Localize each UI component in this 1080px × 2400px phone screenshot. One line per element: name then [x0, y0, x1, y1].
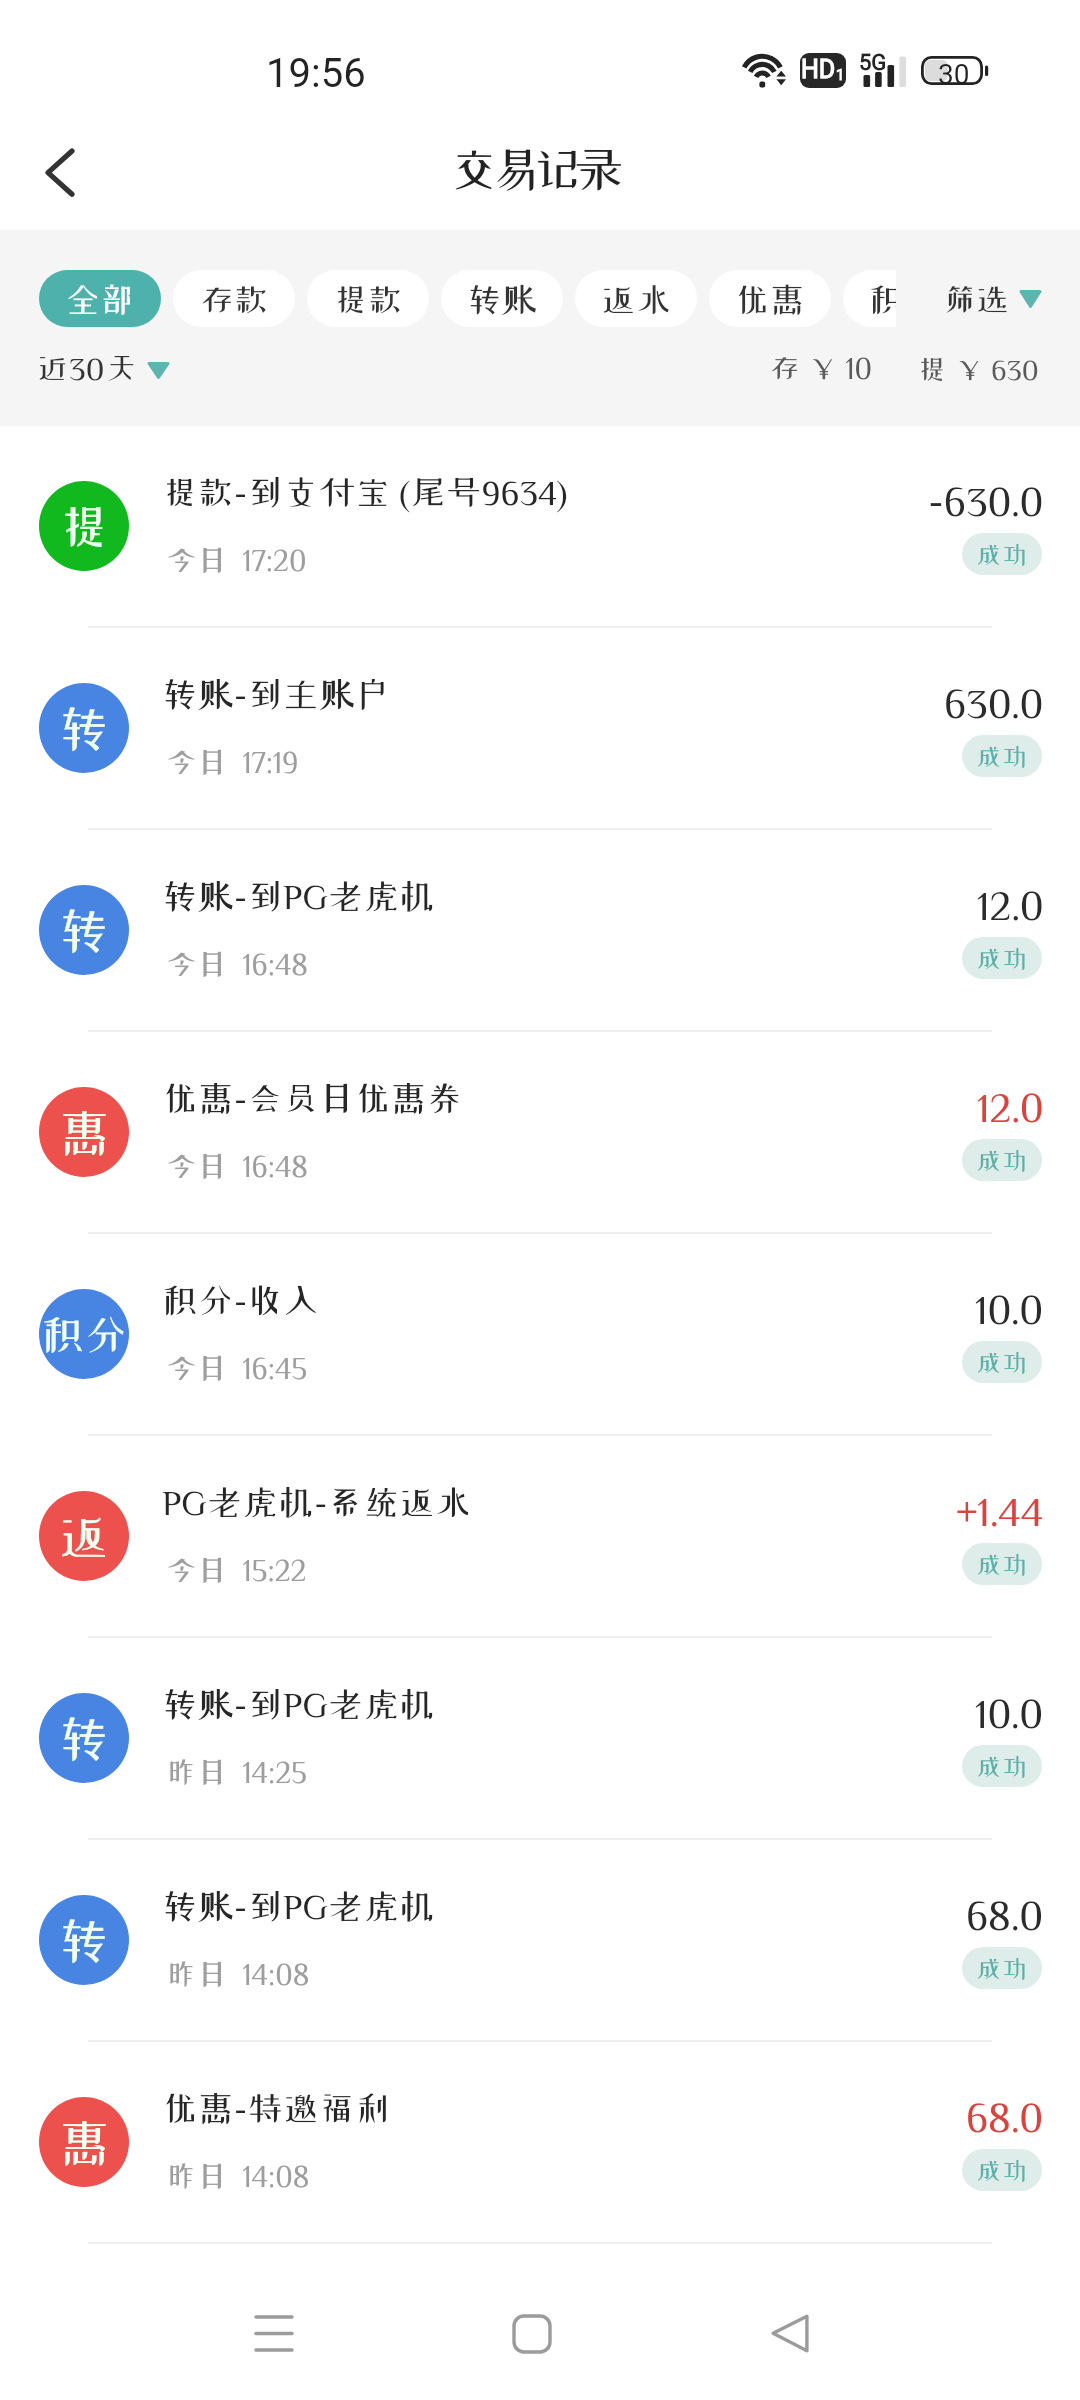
staticText: 12.0 [977, 1086, 1044, 1127]
staticText: 68.0 [966, 2096, 1044, 2137]
staticText: 提款 [333, 282, 403, 316]
staticText: 交易记录 [448, 144, 615, 194]
staticText: 1 [836, 66, 845, 84]
staticText: 积分 [41, 1313, 128, 1355]
staticText: 转账-到PG老虎机 [162, 1888, 436, 1923]
staticText: 成功 [976, 1754, 1028, 1779]
button[interactable]: 返水 [575, 270, 697, 327]
staticText: 成功 [976, 744, 1028, 769]
staticText: 今日 17:19 [166, 747, 299, 777]
staticText: 昨日 14:08 [166, 1959, 310, 1989]
staticText: 成功 [976, 1148, 1028, 1173]
staticText: 积分 [869, 282, 939, 316]
staticText: 转账-到PG老虎机 [162, 1686, 436, 1721]
staticText: 存 ￥ 10 [769, 353, 873, 383]
staticText: 返 [58, 1511, 110, 1561]
button[interactable]: 提款 [307, 270, 429, 327]
button[interactable]: 存款 [173, 270, 295, 327]
staticText: 成功 [976, 1552, 1028, 1577]
staticText: 积分-收入 [162, 1282, 319, 1317]
staticText: 转账-到PG老虎机 [162, 878, 436, 913]
staticText: 5G [859, 50, 887, 76]
staticText: 630.0 [944, 682, 1044, 723]
staticText: 存款 [199, 282, 269, 316]
staticText: 全部 [65, 282, 135, 316]
button[interactable]: 筛选 [896, 270, 1080, 327]
button[interactable]: 转 [0, 1638, 1080, 1840]
staticText: 优惠 [735, 282, 805, 316]
staticText: 10.0 [975, 1288, 1044, 1329]
button[interactable]: 惠 [0, 1032, 1080, 1234]
staticText: 今日 16:48 [166, 949, 308, 979]
staticText: 68.0 [966, 1894, 1044, 1935]
button[interactable]: 优惠 [709, 270, 831, 327]
button[interactable]: 提 [0, 426, 1080, 628]
staticText: 今日 15:22 [166, 1555, 307, 1585]
button[interactable]: 惠 [0, 2042, 1080, 2244]
staticText: 成功 [976, 542, 1028, 567]
staticText: HD [801, 55, 836, 84]
staticText: 12.0 [977, 884, 1044, 925]
button[interactable]: 积分 [843, 270, 965, 327]
button[interactable]: 转 [0, 830, 1080, 1032]
staticText: 30 [938, 58, 970, 90]
staticText: 转账-到主账户 [162, 676, 391, 711]
button[interactable]: 积分 [0, 1234, 1080, 1436]
staticText: 昨日 14:25 [166, 1757, 307, 1787]
button[interactable]: 转 [0, 628, 1080, 830]
staticText: 转 [58, 1713, 110, 1763]
staticText: 返水 [601, 282, 671, 316]
staticText: 成功 [976, 1350, 1028, 1375]
staticText: 优惠-特邀福利 [162, 2090, 391, 2125]
staticText: 转 [58, 703, 110, 753]
staticText: 成功 [976, 2158, 1028, 2183]
button[interactable]: 转 [0, 1840, 1080, 2042]
staticText: 优惠-会员日优惠券 [162, 1080, 463, 1115]
button[interactable]: Back [16, 136, 104, 224]
staticText: 转账 [467, 282, 537, 316]
staticText: +1.44 [956, 1490, 1044, 1531]
staticText: 成功 [976, 946, 1028, 971]
staticText: 成功 [976, 1956, 1028, 1981]
staticText: PG老虎机-系统返水 [162, 1484, 471, 1519]
staticText: 今日 16:48 [166, 1151, 308, 1181]
staticText: 今日 17:20 [166, 545, 307, 575]
button[interactable]: Back [704, 2252, 876, 2382]
staticText: -630.0 [928, 480, 1044, 521]
button[interactable]: 返 [0, 1436, 1080, 1638]
staticText: 近30天 [36, 352, 138, 384]
staticText: 提 ￥ 630 [917, 354, 1039, 383]
button[interactable]: 近30天 [36, 352, 170, 384]
button[interactable]: 全部 [39, 270, 161, 327]
button[interactable]: 转账 [441, 270, 563, 327]
staticText: 昨日 14:08 [166, 2161, 310, 2191]
staticText: 提 [58, 501, 110, 551]
staticText: 惠 [58, 1107, 110, 1157]
button[interactable]: Recent apps [188, 2252, 360, 2382]
staticText: 筛选 [942, 282, 1010, 315]
staticText: 今日 16:45 [166, 1353, 308, 1383]
staticText: 转 [58, 1915, 110, 1965]
staticText: 提款-到支付宝 (尾号9634) [162, 474, 568, 509]
staticText: 转 [58, 905, 110, 955]
staticText: 惠 [58, 2117, 110, 2167]
staticText: 19:56 [266, 50, 366, 97]
button[interactable]: Home [446, 2252, 618, 2382]
staticText: 10.0 [975, 1692, 1044, 1733]
